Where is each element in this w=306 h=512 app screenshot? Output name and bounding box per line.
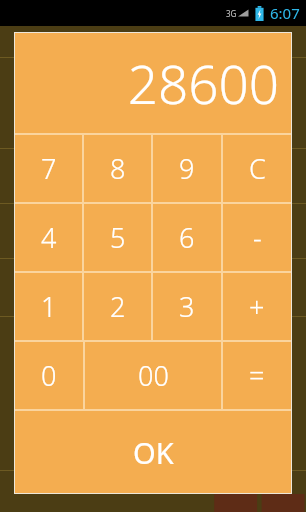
staticText: 9 — [179, 150, 195, 187]
button[interactable]: 6 — [153, 204, 221, 271]
button[interactable]: - — [223, 204, 291, 271]
staticText: OK — [133, 433, 174, 472]
staticText: 2 — [110, 288, 126, 325]
button[interactable]: 8 — [84, 135, 151, 202]
button[interactable]: 9 — [153, 135, 221, 202]
staticText: = — [249, 357, 265, 394]
other: Battery charging — [254, 6, 265, 21]
staticText: 1 — [41, 288, 57, 325]
button[interactable]: 3 — [153, 273, 221, 340]
button[interactable]: = — [223, 342, 291, 409]
other: Signal strength — [237, 7, 249, 19]
button[interactable]: C — [223, 135, 291, 202]
staticText: 8 — [110, 150, 126, 187]
staticText: 3 — [179, 288, 195, 325]
button[interactable]: + — [223, 273, 291, 340]
button[interactable]: 5 — [84, 204, 151, 271]
staticText: 6 — [179, 219, 195, 256]
staticText: 4 — [41, 219, 57, 256]
staticText: - — [253, 219, 262, 256]
staticText: C — [249, 150, 266, 187]
button[interactable]: 2 — [84, 273, 151, 340]
staticText: 5 — [110, 219, 126, 256]
button[interactable]: 7 — [15, 135, 82, 202]
button[interactable]: 1 — [15, 273, 82, 340]
staticText: 7 — [41, 150, 57, 187]
staticText: 3G — [226, 8, 237, 19]
button[interactable]: 0 — [15, 342, 83, 409]
staticText: 6:07 — [270, 3, 300, 23]
staticText: 0 — [41, 357, 57, 394]
button[interactable]: 4 — [15, 204, 82, 271]
button[interactable]: 00 — [85, 342, 221, 409]
staticText: 00 — [138, 357, 169, 394]
staticText: 28600 — [127, 47, 279, 119]
button[interactable]: OK — [15, 411, 291, 493]
staticText: + — [249, 288, 265, 325]
